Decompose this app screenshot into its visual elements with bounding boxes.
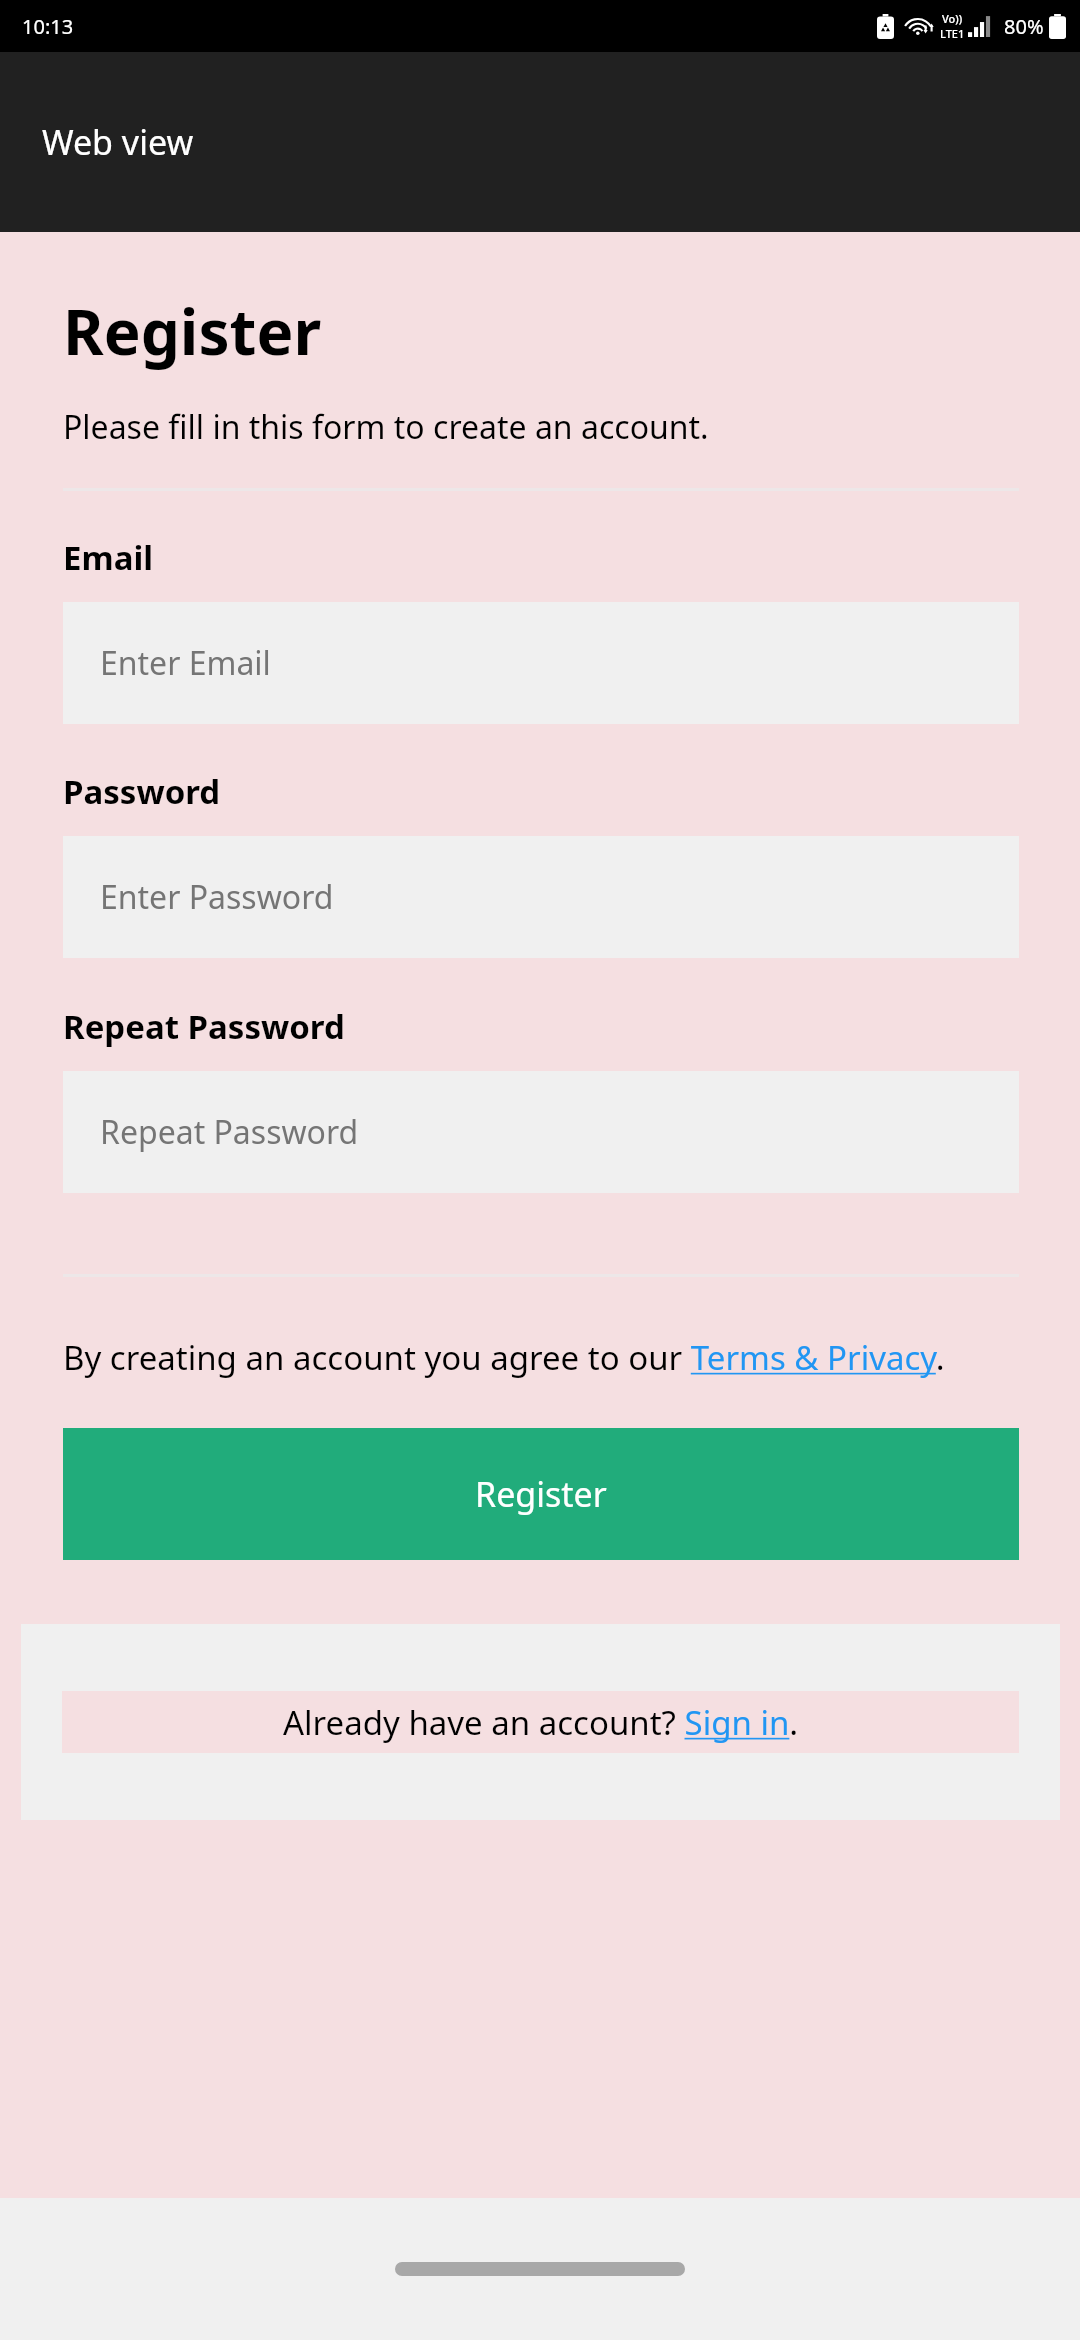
- staticText: LTE1: [940, 26, 965, 41]
- staticText: Repeat Password: [63, 1004, 345, 1049]
- staticText: Vo)): [942, 11, 963, 26]
- staticText: Password: [63, 769, 221, 814]
- other: Home gesture handle: [395, 2262, 685, 2276]
- button[interactable]: By creating an account you agree to our …: [63, 1335, 1022, 1380]
- staticText: Repeat Password: [100, 1110, 359, 1154]
- staticText: Already have an account? Sign in.: [283, 1700, 799, 1745]
- staticText: Please fill in this form to create an ac…: [63, 405, 709, 449]
- button[interactable]: Repeat Password: [63, 1071, 1019, 1193]
- button[interactable]: Register: [63, 1428, 1019, 1560]
- staticText: Register: [475, 1471, 607, 1517]
- staticText: 80%: [1004, 13, 1044, 40]
- staticText: Email: [63, 535, 154, 580]
- staticText: Enter Email: [100, 641, 271, 685]
- button[interactable]: Enter Email: [63, 602, 1019, 724]
- button[interactable]: Enter Password: [63, 836, 1019, 958]
- staticText: Enter Password: [100, 875, 334, 919]
- button[interactable]: Already have an account? Sign in.: [62, 1691, 1019, 1753]
- staticText: Web view: [42, 119, 194, 165]
- staticText: 10:13: [22, 13, 74, 40]
- staticText: Register: [63, 289, 322, 373]
